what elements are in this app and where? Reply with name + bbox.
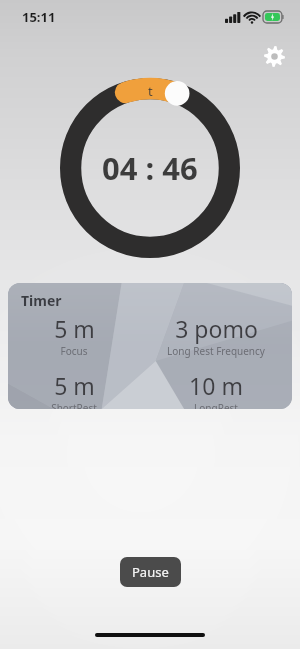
button[interactable]: Settings xyxy=(256,38,292,74)
staticText: ShortRest xyxy=(51,401,97,409)
staticText: 5 m xyxy=(54,313,95,344)
staticText: 3 pomo xyxy=(175,313,258,344)
button[interactable]: 3 pomo xyxy=(140,313,292,358)
staticText: Focus xyxy=(60,344,88,358)
button[interactable]: 5 m xyxy=(8,370,140,409)
button[interactable]: 5 m xyxy=(8,313,140,358)
button[interactable]: Pause xyxy=(120,557,181,587)
staticText: 04 : 46 xyxy=(102,147,198,189)
staticText: Long Rest Frequency xyxy=(167,344,265,358)
staticText: LongRest xyxy=(194,401,238,409)
staticText: 10 m xyxy=(189,370,243,401)
button[interactable]: 10 m xyxy=(140,370,292,409)
button[interactable]: Timer ring xyxy=(60,78,240,258)
staticText: 15:11 xyxy=(22,8,56,26)
staticText: t xyxy=(148,82,153,100)
button[interactable]: Timer xyxy=(8,283,292,409)
staticText: Timer xyxy=(21,291,62,310)
staticText: Pause xyxy=(132,563,169,581)
staticText: 5 m xyxy=(54,370,95,401)
